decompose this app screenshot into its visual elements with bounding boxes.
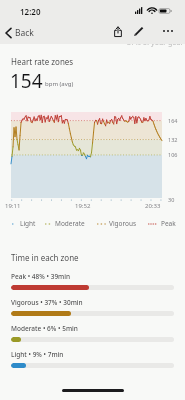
staticText: Vigorous • 37% • 30min [11,298,83,307]
staticText: 12:20 [20,6,41,17]
staticText: 132 [168,136,178,143]
button[interactable]: Back [2,24,38,42]
staticText: Back [15,27,34,39]
staticText: 154 [10,68,43,94]
staticText: 20:33 [145,202,161,210]
staticText: 19:52 [75,202,91,210]
staticText: Light • 9% • 7min [11,350,64,359]
staticText: Vigorous [109,219,137,228]
staticText: Light [20,219,36,228]
staticText: bpm (avg) [45,80,74,88]
staticText: 19:11 [5,202,21,210]
button[interactable]: Vigorous • 37% • 30min [11,298,174,316]
button[interactable]: Peak • 48% • 39min [11,272,174,290]
staticText: Time in each zone [11,252,79,263]
button[interactable]: More options [159,22,176,39]
button[interactable]: Light • 9% • 7min [11,350,174,368]
staticText: 37% of your goal [127,38,183,48]
button[interactable]: Moderate • 6% • 5min [11,324,174,342]
button[interactable]: Share [109,23,126,40]
staticText: 164 [168,117,178,124]
staticText: Peak [161,219,176,228]
staticText: Heart rate zones [11,56,74,67]
staticText: 106 [168,151,178,158]
staticText: 30 [168,196,175,203]
staticText: Moderate • 6% • 5min [11,324,78,333]
staticText: Peak • 48% • 39min [11,272,71,281]
button[interactable]: Edit [130,22,147,39]
staticText: Moderate [55,219,85,228]
